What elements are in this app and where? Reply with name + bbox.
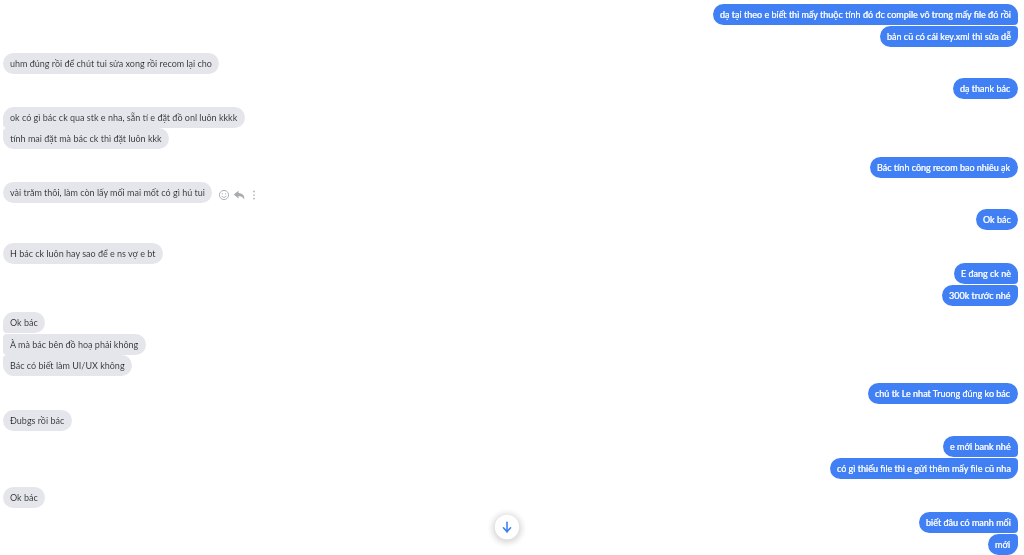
button[interactable]: React	[218, 189, 230, 201]
button[interactable]: biết đâu có manh mối	[919, 512, 1018, 533]
button[interactable]: Ok bác	[976, 209, 1018, 230]
staticText: 300k trước nhé	[949, 290, 1011, 301]
button[interactable]: H bác ck luôn hay sao để e ns vợ e bt	[3, 243, 163, 264]
staticText: E đang ck nè	[961, 268, 1011, 279]
staticText: uhm đúng rồi để chút tui sửa xong rồi re…	[10, 58, 212, 69]
button[interactable]: 300k trước nhé	[942, 285, 1018, 306]
staticText: Ok bác	[983, 214, 1011, 225]
staticText: dạ tại theo e biết thì mấy thuộc tính đó…	[720, 9, 1011, 20]
staticText: có gì thiếu file thì e gửi thêm mấy file…	[837, 463, 1011, 474]
button[interactable]: À mà bác bên đồ hoạ phải không	[3, 334, 146, 355]
button[interactable]: e mới bank nhé	[943, 436, 1018, 457]
staticText: Ok bác	[10, 492, 38, 503]
staticText: chủ tk Le nhat Truong đúng ko bác	[875, 388, 1011, 399]
button[interactable]: Bác tính công recom bao nhiêu ạk	[870, 157, 1018, 178]
staticText: e mới bank nhé	[950, 441, 1011, 452]
staticText: vài trăm thôi, làm còn lấy mối mai mốt c…	[10, 187, 205, 198]
staticText: tính mai đặt mà bác ck thì đặt luôn kkk	[10, 133, 162, 144]
staticText: biết đâu có manh mối	[926, 517, 1011, 528]
staticText: dạ thank bác	[960, 83, 1011, 94]
button[interactable]: chủ tk Le nhat Truong đúng ko bác	[868, 383, 1018, 404]
button[interactable]: More options	[248, 189, 260, 201]
button[interactable]: E đang ck nè	[954, 263, 1018, 284]
staticText: ok có gì bác ck qua stk e nha, sẵn tí e …	[10, 112, 238, 123]
button[interactable]: mới	[988, 534, 1018, 555]
button[interactable]: Ok bác	[3, 487, 45, 508]
staticText: À mà bác bên đồ hoạ phải không	[10, 339, 139, 350]
button[interactable]: có gì thiếu file thì e gửi thêm mấy file…	[830, 458, 1018, 479]
staticText: Đubgs rồi bác	[10, 415, 65, 426]
button[interactable]: dạ thank bác	[953, 78, 1018, 99]
button[interactable]: Ok bác	[3, 312, 45, 333]
staticText: bản cũ có cái key.xml thì sửa dễ	[887, 31, 1011, 42]
staticText: Ok bác	[10, 317, 38, 328]
button[interactable]: Đubgs rồi bác	[3, 410, 72, 431]
button[interactable]: Scroll to bottom	[489, 509, 525, 545]
button[interactable]: ok có gì bác ck qua stk e nha, sẵn tí e …	[3, 107, 245, 128]
button[interactable]: tính mai đặt mà bác ck thì đặt luôn kkk	[3, 128, 169, 149]
button[interactable]: vài trăm thôi, làm còn lấy mối mai mốt c…	[3, 182, 212, 203]
button[interactable]: Bác có biết làm UI/UX không	[3, 355, 132, 376]
staticText: H bác ck luôn hay sao để e ns vợ e bt	[10, 248, 156, 259]
staticText: mới	[995, 539, 1011, 550]
staticText: Bác có biết làm UI/UX không	[10, 360, 125, 371]
staticText: Bác tính công recom bao nhiêu ạk	[877, 162, 1011, 173]
button[interactable]: dạ tại theo e biết thì mấy thuộc tính đó…	[713, 4, 1018, 25]
button[interactable]: uhm đúng rồi để chút tui sửa xong rồi re…	[3, 53, 219, 74]
button[interactable]: bản cũ có cái key.xml thì sửa dễ	[880, 26, 1018, 47]
button[interactable]: Reply	[233, 189, 245, 201]
